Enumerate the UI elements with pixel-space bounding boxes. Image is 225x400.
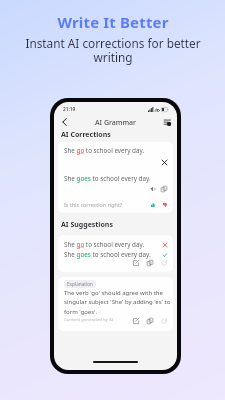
button[interactable]: Settings [161, 116, 174, 129]
button[interactable]: Undo [160, 259, 168, 267]
staticText: AI Corrections [61, 130, 111, 140]
staticText: She goes to school every day. [64, 174, 151, 183]
staticText: 21:19 [63, 106, 76, 113]
staticText: She go to school every day. [64, 146, 145, 155]
button[interactable]: Dismiss [160, 158, 169, 167]
staticText: Write It Better [57, 12, 169, 32]
staticText: AI Suggestions [61, 220, 113, 230]
staticText: Explanation [67, 281, 93, 287]
button[interactable]: Edit [132, 317, 140, 325]
staticText: Is this correction right? [64, 201, 123, 208]
button[interactable]: Copy [146, 259, 154, 267]
button[interactable]: Edit [132, 259, 140, 267]
staticText: She go to school every day. [64, 240, 145, 249]
button[interactable]: Undo [160, 317, 168, 325]
button[interactable]: Copy [160, 185, 168, 193]
button[interactable]: Helpful [149, 201, 156, 208]
staticText: She goes to school every day. [64, 250, 151, 259]
staticText: Instant AI corrections for better writin… [18, 35, 208, 66]
staticText: AI Grammar [95, 118, 137, 128]
button[interactable]: Not helpful [161, 201, 168, 208]
staticText: Content generated by AI [64, 316, 114, 322]
button[interactable]: Play audio [149, 185, 157, 193]
staticText: The verb 'go' should agree with the sing… [64, 289, 173, 316]
button[interactable]: Back [57, 115, 71, 129]
button[interactable]: Copy [146, 317, 154, 325]
